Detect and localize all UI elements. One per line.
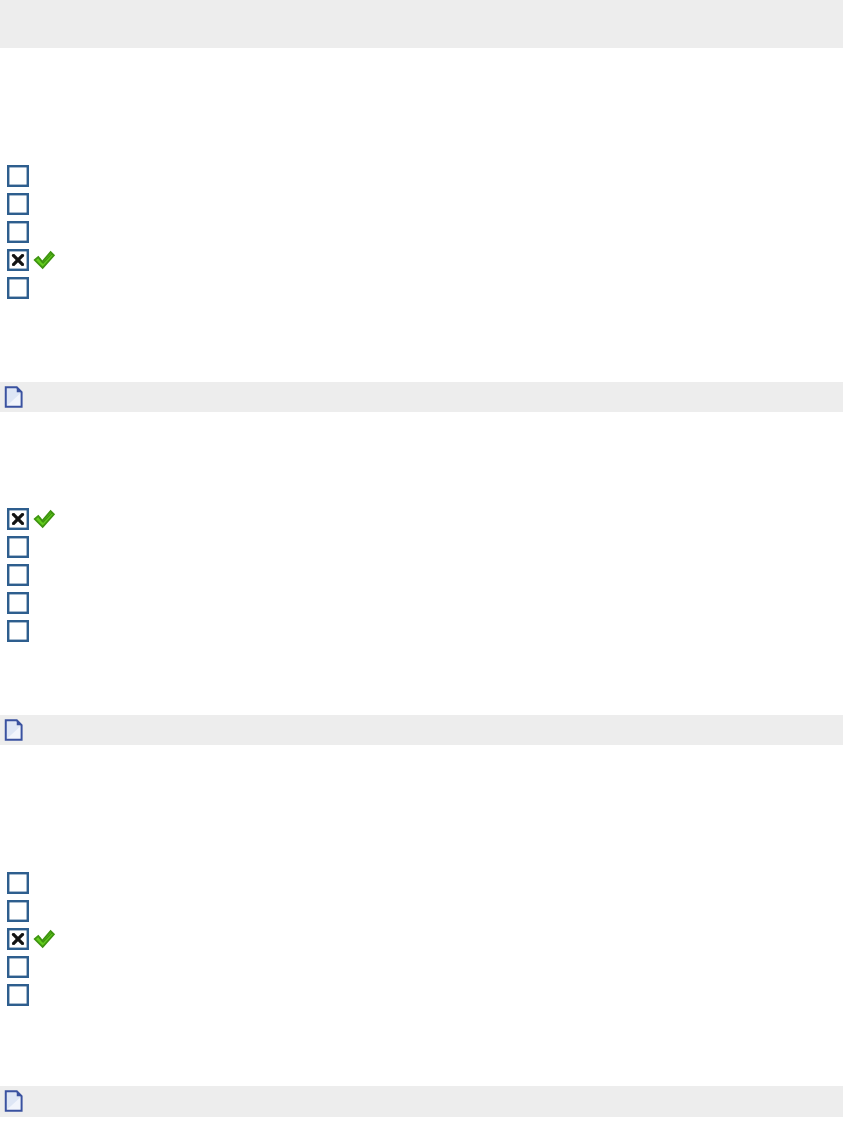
button[interactable] (7, 508, 29, 530)
button[interactable]: Checked (0, 505, 843, 533)
button[interactable] (7, 592, 29, 614)
button[interactable]: Checked (0, 925, 843, 953)
button[interactable] (7, 984, 29, 1006)
button[interactable]: Document (0, 715, 843, 745)
button[interactable] (7, 277, 29, 299)
button[interactable] (7, 564, 29, 586)
button[interactable] (0, 162, 843, 190)
button[interactable] (7, 193, 29, 215)
button[interactable]: Document (0, 382, 843, 412)
button[interactable] (7, 872, 29, 894)
other: Checked (33, 928, 55, 950)
button[interactable] (0, 218, 843, 246)
button[interactable] (0, 533, 843, 561)
button[interactable] (0, 953, 843, 981)
button[interactable] (0, 869, 843, 897)
button[interactable] (0, 274, 843, 302)
button[interactable] (0, 561, 843, 589)
button[interactable]: Document (4, 1090, 26, 1112)
button[interactable] (7, 956, 29, 978)
button[interactable] (7, 249, 29, 271)
button[interactable]: Document (4, 386, 26, 408)
button[interactable] (0, 897, 843, 925)
button[interactable] (0, 617, 843, 645)
button[interactable]: Document (0, 1086, 843, 1116)
button[interactable] (7, 620, 29, 642)
button[interactable] (7, 221, 29, 243)
button[interactable]: Checked (0, 246, 843, 274)
button[interactable] (7, 928, 29, 950)
button[interactable] (7, 900, 29, 922)
other: Checked (33, 249, 55, 271)
button[interactable] (0, 190, 843, 218)
button[interactable]: Document (4, 719, 26, 741)
button[interactable] (0, 589, 843, 617)
button[interactable] (0, 981, 843, 1009)
other: Checked (33, 508, 55, 530)
button[interactable] (7, 536, 29, 558)
button[interactable] (7, 165, 29, 187)
